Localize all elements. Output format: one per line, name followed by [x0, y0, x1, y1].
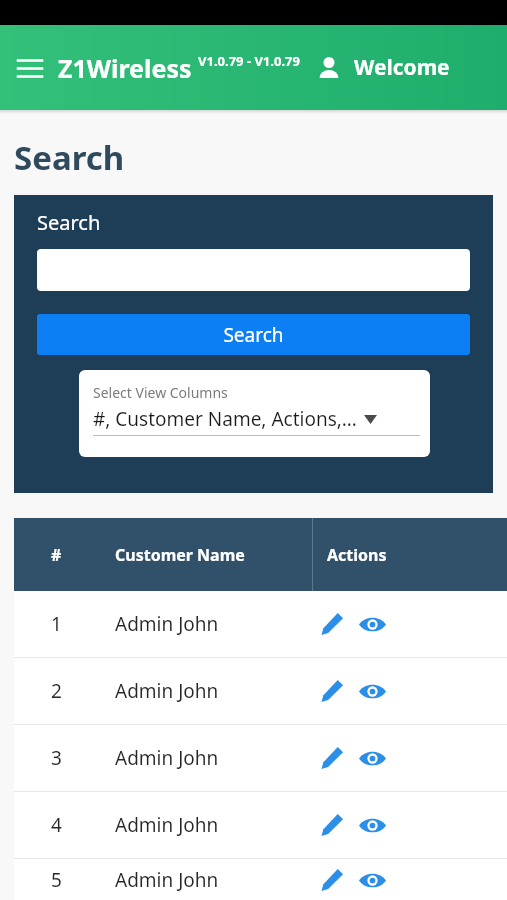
staticText: Admin John — [115, 678, 219, 704]
button[interactable]: Account — [314, 48, 344, 88]
button[interactable]: Select View Columns — [79, 370, 430, 457]
staticText: Admin John — [115, 611, 219, 637]
staticText: V1.0.79 - V1.0.79 — [198, 52, 300, 70]
staticText: 1 — [51, 611, 62, 637]
staticText: Z1Wireless — [58, 51, 192, 85]
staticText: Search — [37, 209, 101, 236]
button[interactable]: View — [352, 738, 392, 778]
button[interactable]: View — [352, 860, 392, 900]
staticText: Customer Name — [115, 544, 245, 566]
button[interactable]: 5 — [14, 859, 507, 900]
staticText: Search — [223, 322, 284, 348]
button[interactable]: Search input field — [37, 249, 470, 291]
staticText: 5 — [51, 867, 62, 893]
staticText: Select View Columns — [93, 383, 228, 402]
button[interactable]: 2 — [14, 658, 507, 724]
button[interactable]: Edit — [312, 738, 352, 778]
staticText: Welcome fieldadmin — [354, 53, 507, 82]
staticText: # — [51, 544, 62, 566]
staticText: Search — [14, 135, 125, 180]
staticText: Actions — [327, 544, 387, 566]
button[interactable]: Edit — [312, 860, 352, 900]
button[interactable]: 4 — [14, 792, 507, 858]
button[interactable]: View — [352, 604, 392, 644]
button[interactable]: Open navigation menu — [15, 48, 45, 88]
button[interactable]: Edit — [312, 604, 352, 644]
button[interactable]: Edit — [312, 671, 352, 711]
button[interactable]: Edit — [312, 805, 352, 845]
staticText: 2 — [51, 678, 62, 704]
button[interactable]: View — [352, 671, 392, 711]
staticText: Admin John — [115, 745, 219, 771]
staticText: 3 — [51, 745, 62, 771]
button[interactable]: 3 — [14, 725, 507, 791]
button[interactable]: View — [352, 805, 392, 845]
staticText: 4 — [51, 812, 62, 838]
staticText: #, Customer Name, Actions,… — [93, 406, 357, 432]
staticText: Admin John — [115, 812, 219, 838]
staticText: Admin John — [115, 867, 219, 893]
button[interactable]: 1 — [14, 591, 507, 657]
button[interactable]: Search — [37, 314, 470, 355]
